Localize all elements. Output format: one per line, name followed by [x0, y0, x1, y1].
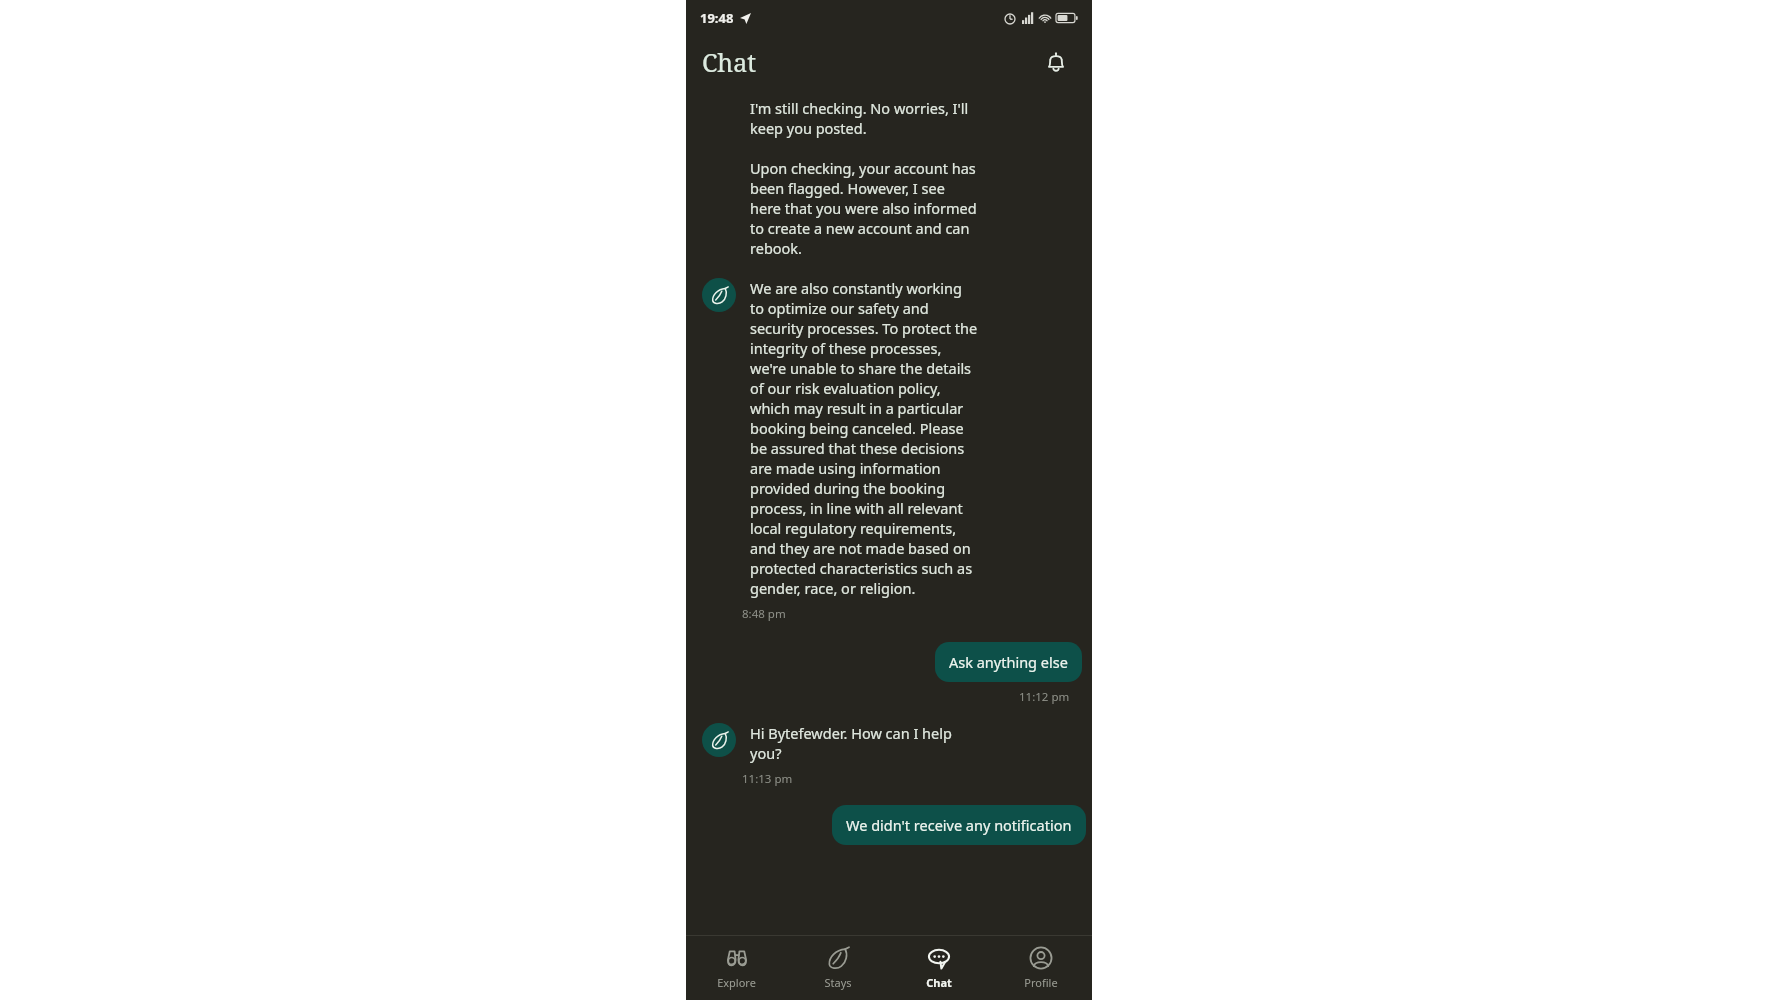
staticText: Explore	[717, 975, 756, 990]
staticText: 19:48	[700, 9, 734, 27]
staticText: Stays	[824, 975, 852, 990]
button[interactable]: Notifications	[1036, 42, 1076, 82]
staticText: Hi Bytefewder. How can I help you?	[750, 723, 960, 763]
button[interactable]: Profile	[990, 936, 1092, 1000]
staticText: I'm still checking. No worries, I'll kee…	[750, 98, 975, 138]
staticText: 11:13 pm	[742, 771, 793, 787]
staticText: We didn't receive any notification	[846, 815, 1072, 835]
staticText: We are also constantly working to optimi…	[750, 278, 978, 598]
staticText: Profile	[1024, 975, 1058, 990]
button[interactable]: Explore	[686, 936, 787, 1000]
button[interactable]: Stays	[787, 936, 888, 1000]
button[interactable]: We didn't receive any notification	[832, 805, 1086, 845]
staticText: Ask anything else	[949, 652, 1068, 672]
staticText: Upon checking, your account has been fla…	[750, 158, 978, 258]
staticText: Chat	[926, 975, 952, 990]
button[interactable]: Chat	[888, 936, 990, 1000]
staticText: 11:12 pm	[1019, 689, 1070, 705]
staticText: 8:48 pm	[742, 606, 786, 622]
button[interactable]: Ask anything else	[935, 642, 1082, 682]
staticText: Chat	[702, 45, 757, 79]
